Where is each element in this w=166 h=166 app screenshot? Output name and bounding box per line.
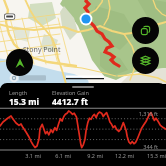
staticText: 3.1 mi — [25, 152, 41, 159]
button[interactable]: Map style — [132, 17, 159, 44]
staticText: 344 ft — [143, 143, 158, 150]
staticText: Elevation Gain — [52, 89, 89, 96]
staticText: 4412.7 ft — [52, 96, 88, 108]
staticText: 12.2 mi — [115, 152, 134, 159]
staticText: 15.3 mi — [9, 96, 40, 108]
button[interactable]: Layers — [132, 47, 159, 74]
staticText: Length — [9, 89, 28, 96]
staticText: 1,316 ft — [138, 110, 158, 117]
button[interactable]: Recenter location — [6, 49, 33, 76]
staticText: Stony Point — [23, 45, 61, 55]
staticText: 15.3 mi — [147, 152, 166, 159]
staticText: 9.2 mi — [87, 152, 103, 159]
staticText: 6.1 mi — [55, 152, 71, 159]
